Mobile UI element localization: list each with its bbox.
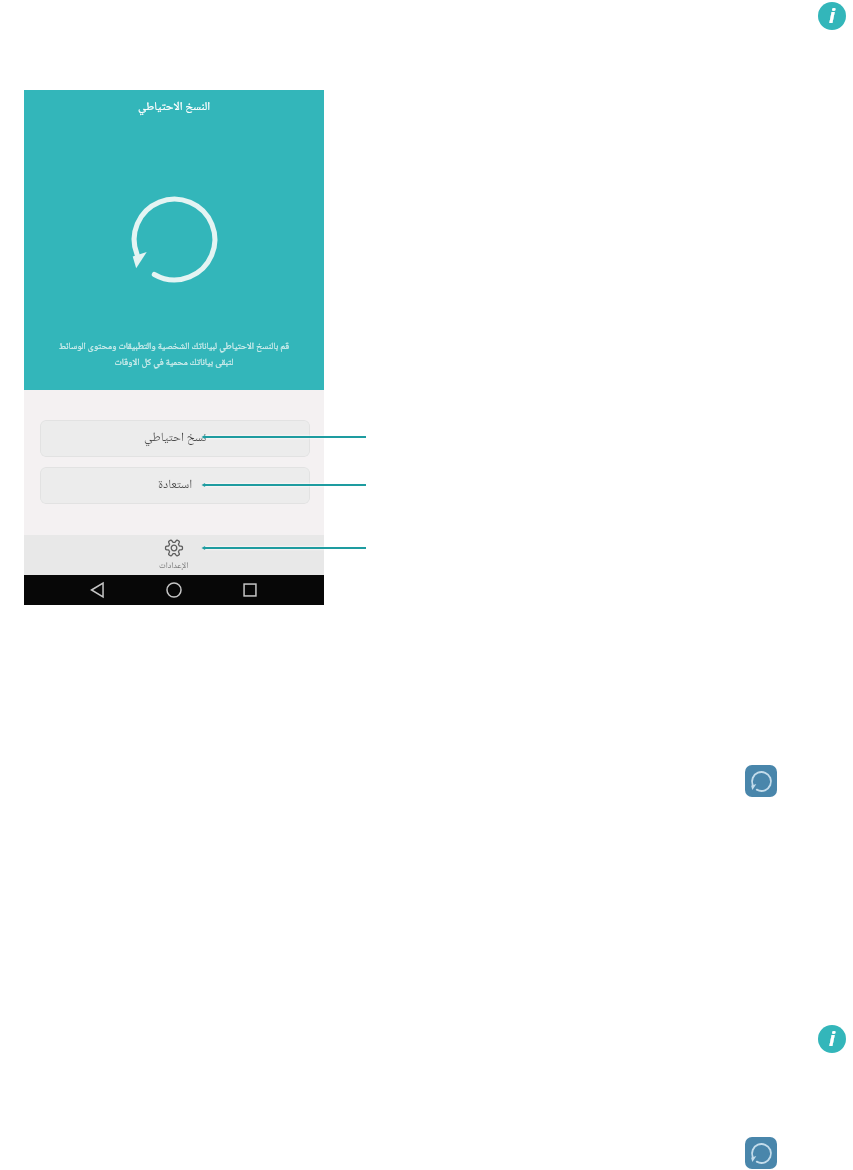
button[interactable]: استعادة (40, 467, 310, 504)
staticText: i (829, 1025, 835, 1052)
staticText: استعادة (158, 475, 193, 496)
button[interactable]: الإعدادات (24, 535, 324, 575)
staticText: النسخ الاحتياطي (138, 97, 211, 117)
staticText: لتبقى بياناتك محمية في كل الاوقات (32, 355, 316, 371)
button[interactable]: Recents (241, 581, 259, 599)
staticText: i (829, 2, 835, 29)
button[interactable]: Back (89, 581, 107, 599)
staticText: نسخ احتياطي (144, 428, 207, 449)
button[interactable]: Home (165, 581, 183, 599)
button[interactable]: Info (818, 1025, 846, 1053)
button[interactable]: Backup app (745, 1137, 777, 1169)
button[interactable]: Info (818, 2, 846, 30)
staticText: الإعدادات (159, 559, 189, 574)
staticText: قم بالنسخ الاحتياطي لبياناتك الشخصية وال… (32, 339, 316, 355)
button[interactable]: Backup app (745, 765, 777, 797)
button[interactable]: نسخ احتياطي (40, 420, 310, 457)
